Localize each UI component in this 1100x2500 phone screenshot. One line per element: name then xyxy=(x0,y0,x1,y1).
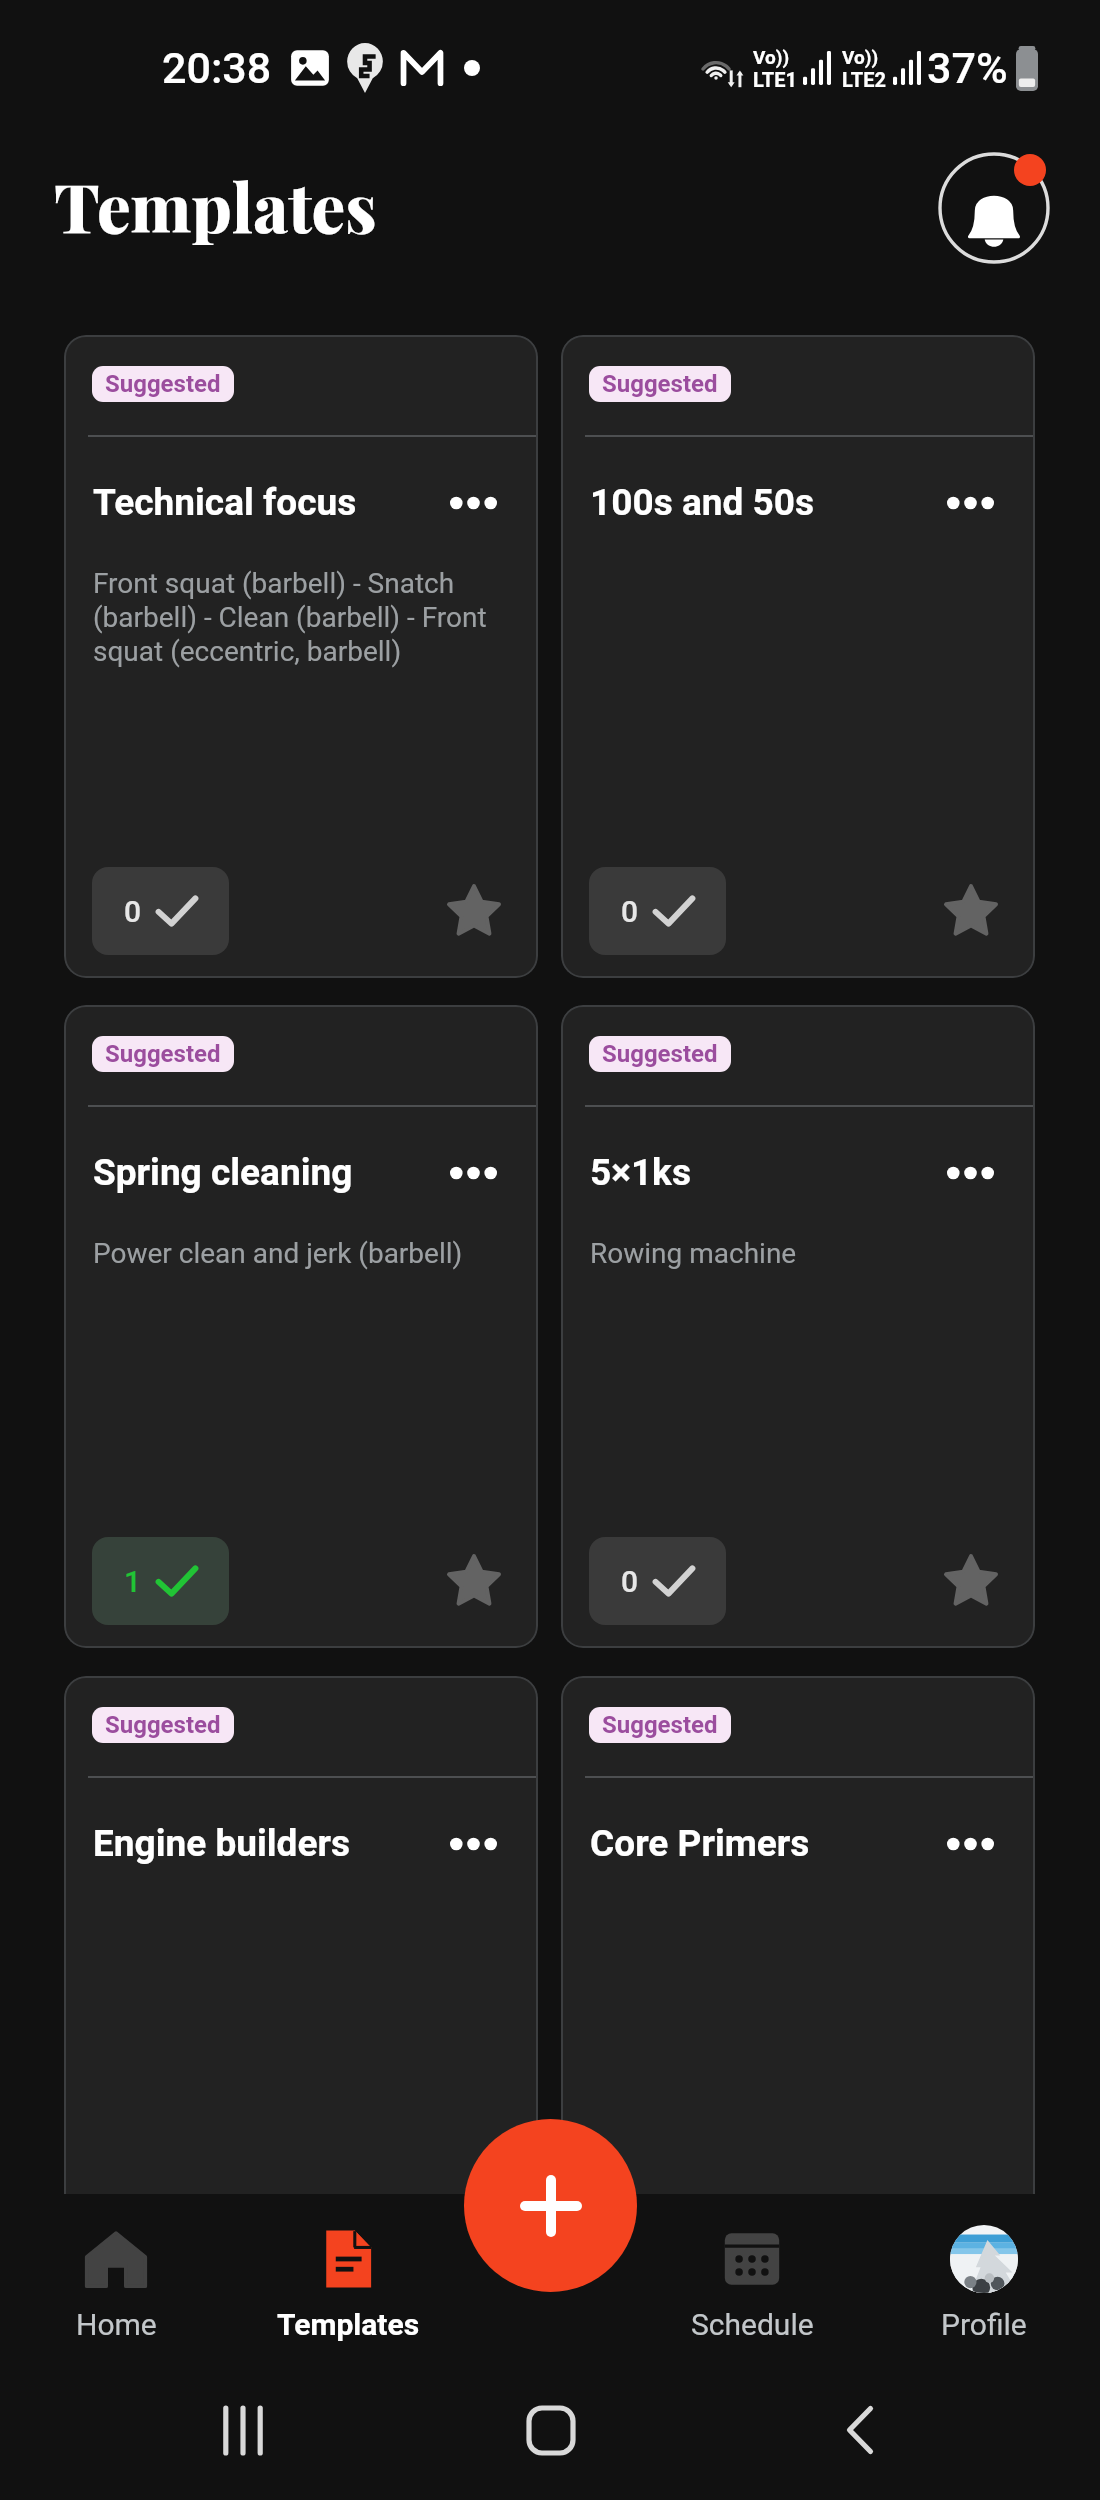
button[interactable]: Home xyxy=(0,2194,232,2360)
button[interactable]: Recent apps xyxy=(213,2400,273,2460)
button[interactable]: Suggested xyxy=(64,1005,538,1648)
button[interactable]: Schedule xyxy=(636,2194,868,2360)
staticText: LTE2 xyxy=(842,68,886,91)
button[interactable]: Suggested xyxy=(64,335,538,978)
staticText: Profile xyxy=(941,2307,1027,2342)
staticText: Suggested xyxy=(602,1711,718,1739)
button[interactable]: Suggested xyxy=(561,1676,1035,2319)
staticText: Suggested xyxy=(105,1040,221,1068)
staticText: Vo)) xyxy=(842,46,879,68)
staticText: LTE1 xyxy=(753,68,797,91)
staticText: 1 xyxy=(124,1564,142,1599)
staticText: Suggested xyxy=(105,1711,221,1739)
button[interactable]: 0 xyxy=(589,867,726,955)
staticText: 0 xyxy=(621,894,639,929)
staticText: Technical focus xyxy=(93,481,450,524)
button[interactable]: 0 xyxy=(92,867,229,955)
staticText: Home xyxy=(76,2307,157,2342)
staticText: Spring cleaning xyxy=(93,1151,450,1194)
button[interactable]: Notifications xyxy=(934,148,1054,268)
staticText: 0 xyxy=(621,1564,639,1599)
staticText: 100s and 50s xyxy=(590,481,947,524)
button[interactable]: Add template xyxy=(464,2119,637,2292)
staticText: Vo)) xyxy=(753,46,790,68)
staticText: Suggested xyxy=(105,370,221,398)
button[interactable]: More options xyxy=(947,1824,994,1864)
button[interactable]: 1 xyxy=(92,1537,229,1625)
button[interactable]: Favourite xyxy=(436,1543,512,1619)
staticText: Engine builders xyxy=(93,1822,450,1865)
button[interactable]: 0 xyxy=(589,1537,726,1625)
staticText: Suggested xyxy=(602,370,718,398)
button[interactable]: Suggested xyxy=(64,1676,538,2319)
button[interactable]: More options xyxy=(450,1153,497,1193)
staticText: Front squat (barbell) - Snatch (barbell)… xyxy=(93,567,518,668)
button[interactable]: More options xyxy=(947,483,994,523)
staticText: Core Primers xyxy=(590,1822,947,1865)
staticText: Power clean and jerk (barbell) xyxy=(93,1237,463,1270)
staticText: Schedule xyxy=(691,2307,814,2342)
button[interactable]: Templates xyxy=(232,2194,464,2360)
button[interactable]: Suggested xyxy=(561,335,1035,978)
button[interactable]: Home xyxy=(521,2400,581,2460)
staticText: Templates xyxy=(277,2307,420,2342)
button[interactable]: Suggested xyxy=(561,1005,1035,1648)
button[interactable]: More options xyxy=(450,483,497,523)
button[interactable]: Favourite xyxy=(436,873,512,949)
staticText: Templates xyxy=(54,161,377,250)
button[interactable]: Profile xyxy=(868,2194,1100,2360)
button[interactable]: Back xyxy=(830,2400,890,2460)
button[interactable]: More options xyxy=(947,1153,994,1193)
button[interactable]: More options xyxy=(450,1824,497,1864)
staticText: 37% xyxy=(927,43,1008,93)
staticText: Rowing machine xyxy=(590,1237,797,1270)
staticText: 5×1ks xyxy=(590,1151,947,1194)
button[interactable]: Favourite xyxy=(933,1543,1009,1619)
staticText: Suggested xyxy=(602,1040,718,1068)
staticText: 0 xyxy=(124,894,142,929)
button[interactable]: Favourite xyxy=(933,873,1009,949)
staticText: 20:38 xyxy=(162,43,272,93)
